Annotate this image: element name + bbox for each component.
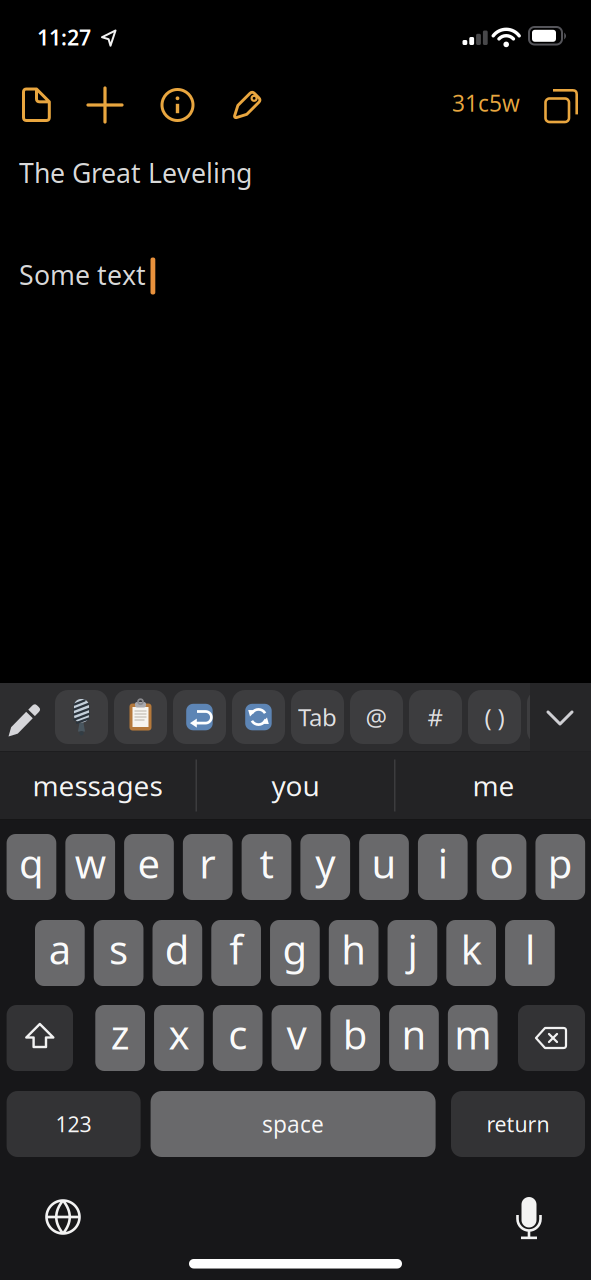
button[interactable]: me	[396, 751, 591, 819]
staticText: r	[199, 836, 216, 889]
staticText: messages	[32, 767, 162, 804]
button[interactable]: @	[350, 690, 403, 744]
staticText: f	[229, 922, 243, 975]
staticText: y	[315, 836, 335, 889]
button[interactable]	[147, 75, 207, 135]
button[interactable]: l	[505, 920, 555, 986]
button[interactable]	[518, 1005, 585, 1071]
staticText: v	[286, 1007, 306, 1060]
button[interactable]: o	[477, 834, 526, 900]
staticText: space	[262, 1109, 324, 1139]
button[interactable]	[7, 1005, 73, 1071]
staticText: o	[489, 836, 513, 889]
staticText: return	[486, 1110, 549, 1138]
button[interactable]: g	[270, 920, 320, 986]
button[interactable]: a	[35, 920, 85, 986]
staticText: The Great Leveling	[19, 155, 252, 190]
staticText: 11:27	[37, 23, 91, 51]
staticText: d	[165, 922, 190, 975]
staticText: m	[454, 1007, 491, 1060]
button[interactable]: n	[389, 1005, 439, 1071]
staticText: h	[341, 922, 366, 975]
button[interactable]: y	[300, 834, 350, 900]
staticText: z	[111, 1007, 130, 1060]
button[interactable]	[505, 1189, 553, 1245]
staticText: ( )	[484, 701, 504, 733]
staticText: @	[365, 701, 387, 733]
staticText: q	[19, 836, 44, 889]
button[interactable]	[114, 690, 167, 744]
button[interactable]: e	[124, 834, 174, 900]
button[interactable]: w	[65, 834, 115, 900]
staticText: a	[49, 922, 71, 975]
staticText: me	[472, 767, 514, 804]
button[interactable]: space	[151, 1091, 436, 1157]
button[interactable]	[232, 690, 285, 744]
button[interactable]	[217, 75, 277, 135]
button[interactable]	[541, 701, 579, 735]
button[interactable]: c	[213, 1005, 262, 1071]
button[interactable]	[75, 75, 135, 135]
button[interactable]: ( )	[468, 690, 521, 744]
staticText: p	[548, 836, 573, 889]
button[interactable]: return	[451, 1091, 585, 1157]
staticText: Some text	[19, 257, 146, 292]
button[interactable]: p	[535, 834, 585, 900]
staticText: s	[109, 922, 128, 975]
button[interactable]: s	[94, 920, 143, 986]
button[interactable]: t	[242, 834, 291, 900]
button[interactable]: f	[211, 920, 261, 986]
button[interactable]: j	[388, 920, 437, 986]
button[interactable]: m	[448, 1005, 498, 1071]
button[interactable]	[540, 85, 582, 127]
button[interactable]: v	[272, 1005, 321, 1071]
button[interactable]: #	[409, 690, 462, 744]
staticText: #	[427, 701, 443, 733]
button[interactable]: u	[359, 834, 409, 900]
staticText: w	[75, 836, 106, 889]
button[interactable]	[173, 690, 226, 744]
button[interactable]: Tab	[291, 690, 344, 744]
button[interactable]	[35, 1189, 91, 1245]
staticText: t	[259, 836, 273, 889]
staticText: Tab	[298, 701, 337, 733]
button[interactable]: k	[446, 920, 496, 986]
button[interactable]: 31c5w	[360, 88, 520, 118]
staticText: l	[525, 922, 535, 975]
button[interactable]: you	[197, 751, 394, 819]
staticText: 31c5w	[452, 88, 520, 118]
staticText: e	[137, 836, 160, 889]
button[interactable]: q	[7, 834, 56, 900]
button[interactable]: i	[418, 834, 468, 900]
button[interactable]	[6, 75, 66, 135]
button[interactable]	[1, 690, 51, 744]
button[interactable]	[527, 690, 580, 744]
button[interactable]: d	[152, 920, 202, 986]
button[interactable]	[55, 690, 108, 744]
staticText: u	[371, 836, 396, 889]
button[interactable]: 123	[7, 1091, 141, 1157]
button[interactable]: r	[183, 834, 233, 900]
staticText: j	[407, 922, 417, 975]
staticText: c	[228, 1007, 247, 1060]
staticText: n	[401, 1007, 426, 1060]
button[interactable]: h	[329, 920, 378, 986]
staticText: k	[461, 922, 482, 975]
button[interactable]: z	[95, 1005, 145, 1071]
staticText: g	[282, 922, 307, 975]
button[interactable]: b	[330, 1005, 380, 1071]
button[interactable]: messages	[0, 751, 195, 819]
staticText: 123	[56, 1110, 92, 1138]
staticText: i	[438, 836, 448, 889]
staticText: x	[168, 1007, 189, 1060]
button[interactable]: x	[154, 1005, 204, 1071]
staticText: you	[271, 767, 319, 804]
staticText: b	[343, 1007, 368, 1060]
